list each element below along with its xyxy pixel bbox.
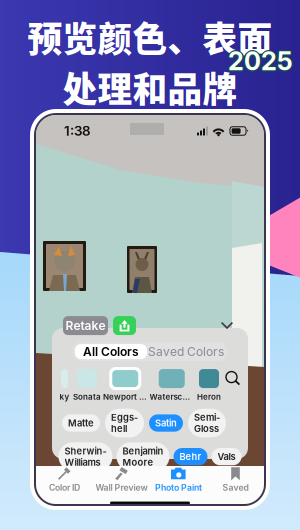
staticText: 2025 [227,46,292,76]
staticText: All Colors [83,344,139,359]
staticText: Sonata [73,392,101,402]
button[interactable]: Saved [207,465,264,493]
button[interactable]: Sherwin-Williams [58,442,112,471]
button[interactable]: Share [113,316,136,335]
button[interactable]: Eggshell [105,409,144,437]
button[interactable]: Benjamin Moore [116,442,169,471]
button[interactable]: Search colors [224,367,242,390]
button[interactable]: Newport Blue [103,367,147,402]
staticText: Eggshell [111,412,138,434]
button[interactable]: Retake [63,316,108,335]
staticText: Vals [217,451,235,462]
staticText: ky [59,392,69,402]
staticText: Retake [65,318,105,333]
staticText: Heron [197,392,221,402]
staticText: 预览颜色、表面 [27,12,272,62]
button[interactable]: Sonata [73,367,101,402]
button[interactable]: All Colors [75,344,147,359]
button[interactable]: Waterscape [149,367,194,402]
staticText: 处理和品牌 [62,62,237,112]
button[interactable]: Wall Preview [93,465,150,493]
staticText: Color ID [49,482,80,493]
button[interactable]: ky [58,367,71,402]
staticText: Behr [179,451,201,462]
button[interactable]: Semi-Gloss [188,409,226,437]
button[interactable]: Behr [173,448,207,465]
staticText: Newport Blue [103,392,147,402]
staticText: Sherwin-Williams [64,445,106,468]
staticText: Waterscape [149,392,194,402]
button[interactable]: Collapse panel [217,316,237,335]
button[interactable]: Saved Colors [147,344,225,359]
button[interactable]: Heron [196,367,222,402]
button[interactable]: Color ID [36,465,93,493]
staticText: 2025 [228,46,293,76]
staticText: Satin [155,417,177,429]
staticText: 2025 [228,44,293,75]
staticText: Saved [222,482,248,493]
staticText: 2025 [229,46,294,76]
button[interactable]: Vals [211,448,241,465]
staticText: 1:38 [64,123,91,139]
staticText: Benjamin Moore [122,445,163,468]
staticText: Semi-Gloss [194,412,220,434]
button[interactable]: Satin [149,414,183,432]
staticText: Wall Preview [95,482,147,493]
staticText: 2025 [228,47,293,78]
button[interactable]: Photo Paint [150,465,207,493]
button[interactable]: Matte [62,414,100,432]
staticText: Matte [68,417,94,429]
staticText: Saved Colors [148,344,224,359]
staticText: Photo Paint [155,482,202,493]
